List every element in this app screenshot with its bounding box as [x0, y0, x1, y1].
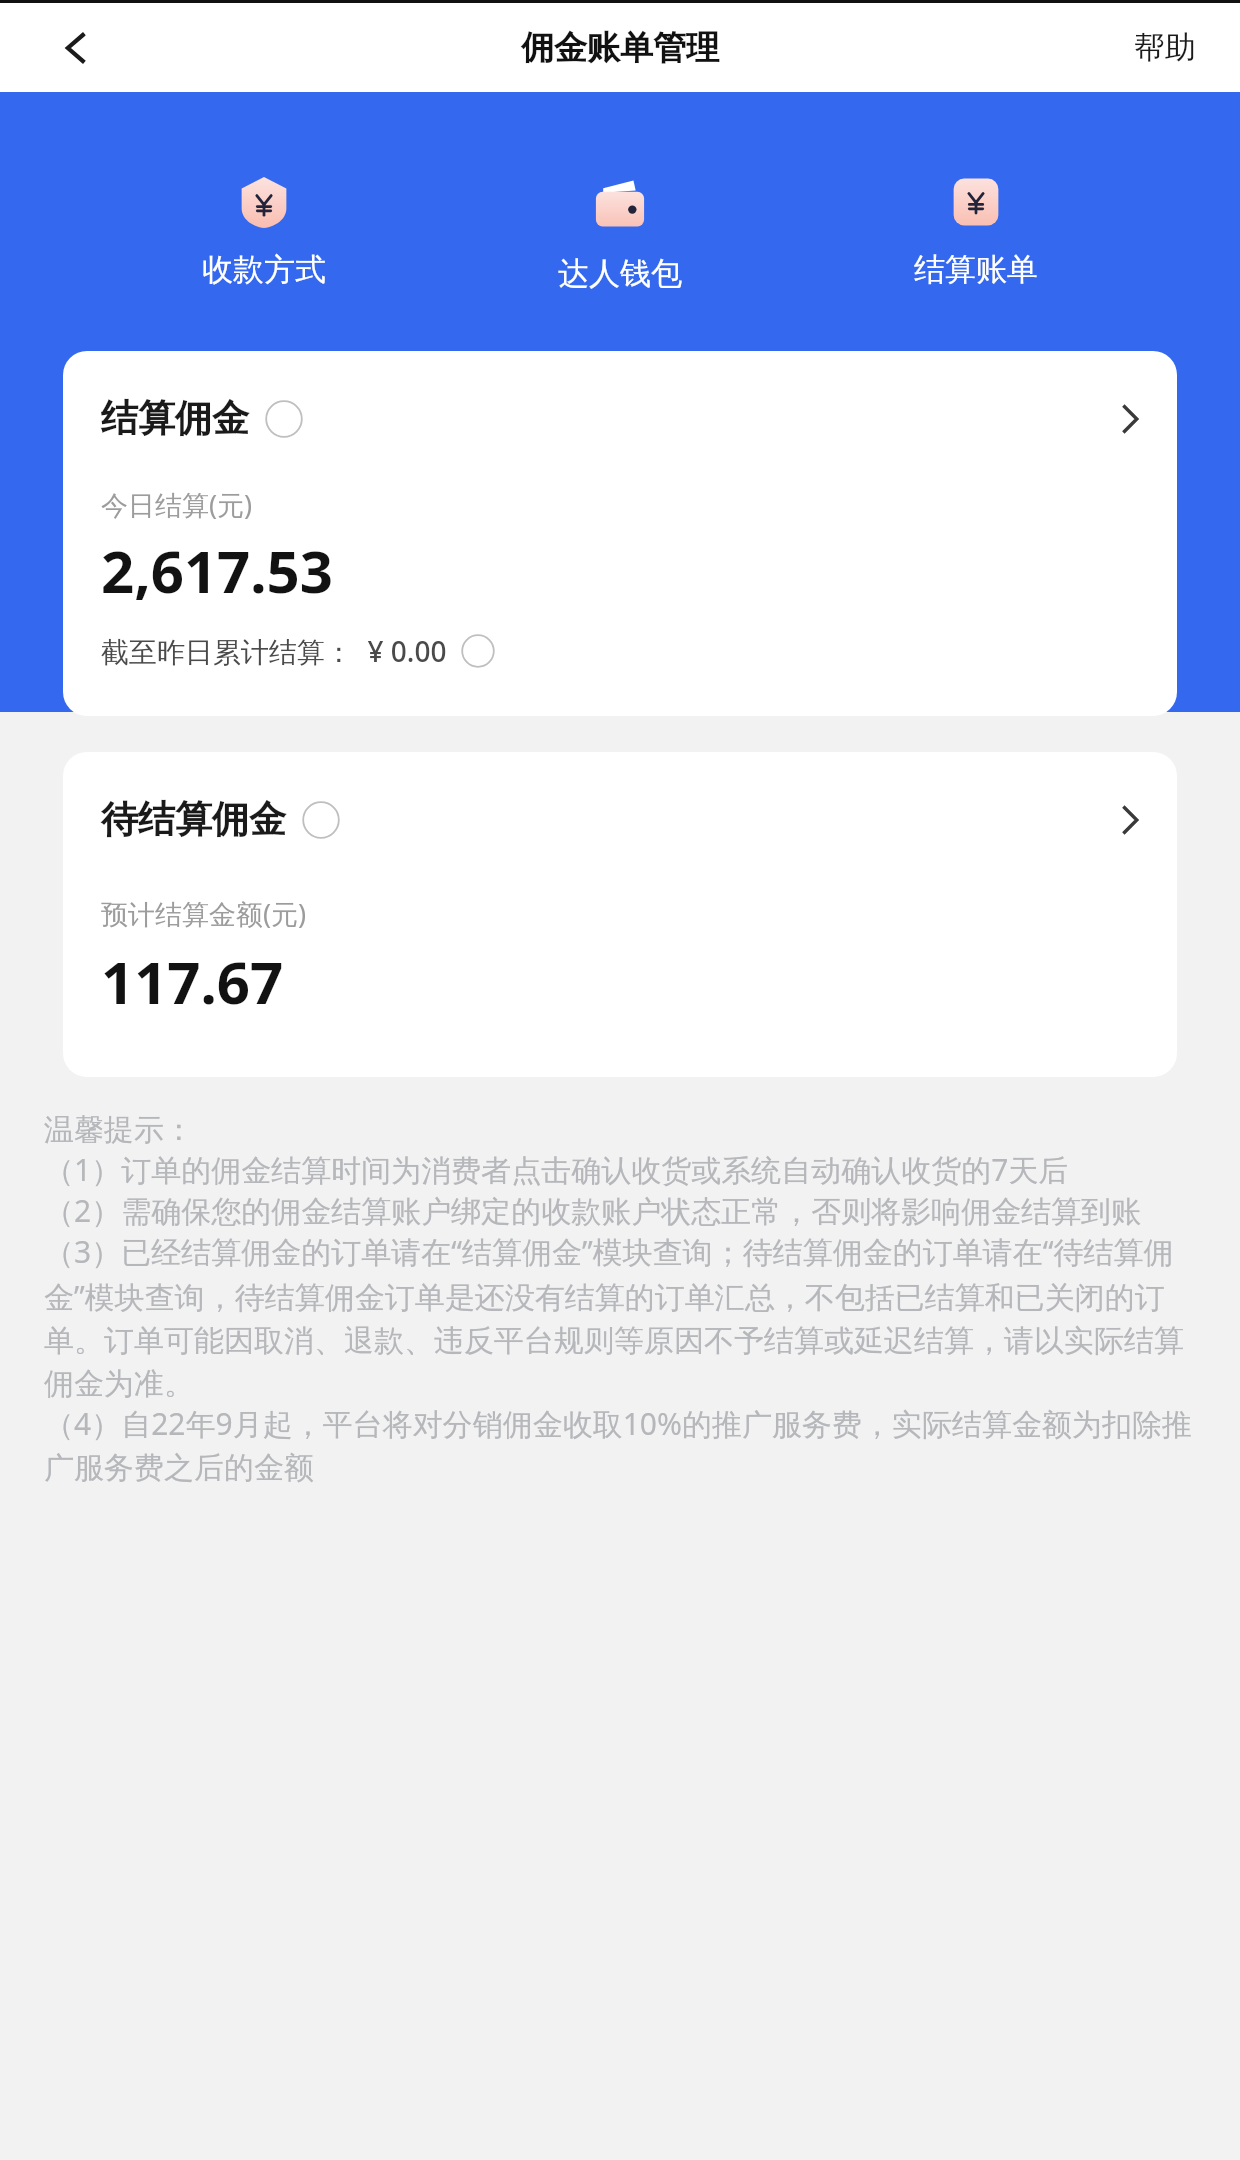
- staticText: 2,617.53: [101, 531, 333, 610]
- button[interactable]: 达人钱包: [528, 170, 712, 299]
- button[interactable]: 帮助: [1124, 18, 1206, 77]
- staticText: 预计结算金额(元): [101, 895, 307, 932]
- button[interactable]: Back: [46, 18, 106, 78]
- staticText: （3）已经结算佣金的订单请在“结算佣金”模块查询；待结算佣金的订单请在“待结算佣…: [44, 1231, 1202, 1403]
- staticText: 今日结算(元): [101, 486, 253, 523]
- button[interactable]: 收款方式: [172, 170, 356, 295]
- staticText: 温馨提示：: [44, 1111, 194, 1149]
- staticText: （4）自22年9月起，平台将对分销佣金收取10%的推广服务费，实际结算金额为扣除…: [44, 1403, 1202, 1487]
- staticText: （1）订单的佣金结算时间为消费者点击确认收货或系统自动确认收货的7天后: [44, 1149, 1069, 1190]
- staticText: 帮助: [1134, 28, 1196, 67]
- staticText: 结算佣金: [101, 395, 249, 442]
- button[interactable]: 结算佣金: [63, 351, 1177, 716]
- staticText: 达人钱包: [558, 254, 682, 293]
- staticText: 117.67: [101, 942, 284, 1021]
- staticText: 结算账单: [914, 250, 1038, 289]
- staticText: 截至昨日累计结算： ¥ 0.00: [101, 632, 447, 670]
- button[interactable]: 结算账单: [884, 170, 1068, 295]
- staticText: （2）需确保您的佣金结算账户绑定的收款账户状态正常，否则将影响佣金结算到账: [44, 1190, 1142, 1231]
- staticText: 待结算佣金: [101, 796, 286, 843]
- button[interactable]: 待结算佣金: [63, 752, 1177, 1077]
- staticText: 佣金账单管理: [521, 27, 719, 69]
- staticText: 收款方式: [202, 250, 326, 289]
